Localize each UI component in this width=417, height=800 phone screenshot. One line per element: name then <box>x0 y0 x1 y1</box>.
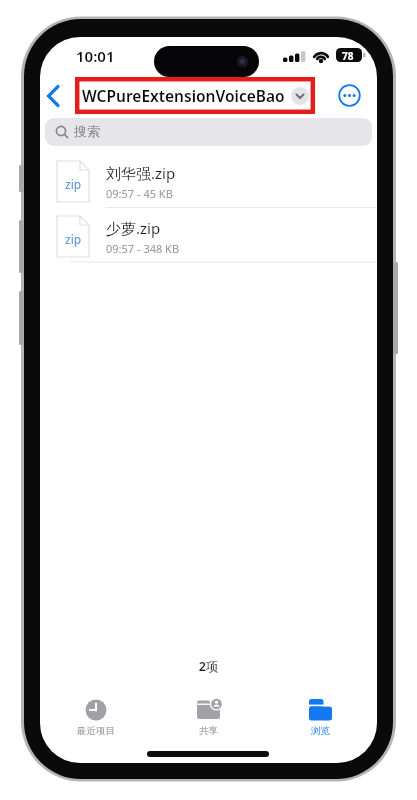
staticText: 78 <box>342 49 354 63</box>
staticText: 刘华强.zip <box>106 163 176 183</box>
staticText: 共享 <box>199 725 218 737</box>
button[interactable]: 浏览 <box>280 699 360 737</box>
staticText: 最近项目 <box>77 725 115 737</box>
button[interactable] <box>42 80 68 112</box>
staticText: 搜索 <box>74 123 100 139</box>
staticText: 少萝.zip <box>106 218 161 238</box>
staticText: zip <box>65 231 82 247</box>
button[interactable]: 共享 <box>168 699 248 737</box>
staticText: WCPureExtensionVoiceBao <box>82 85 285 106</box>
staticText: 10:01 <box>76 46 115 66</box>
button[interactable] <box>338 84 361 107</box>
button[interactable]: zip <box>56 160 376 203</box>
button[interactable]: zip <box>56 215 376 258</box>
staticText: 09:57 - 348 KB <box>106 241 180 256</box>
button[interactable]: 搜索 <box>45 118 372 146</box>
staticText: 2项 <box>0 658 417 675</box>
button[interactable]: WCPureExtensionVoiceBao <box>75 77 315 114</box>
staticText: 浏览 <box>311 725 330 737</box>
button[interactable]: 最近项目 <box>56 699 136 737</box>
staticText: 09:57 - 45 KB <box>106 186 173 201</box>
staticText: zip <box>65 176 82 192</box>
